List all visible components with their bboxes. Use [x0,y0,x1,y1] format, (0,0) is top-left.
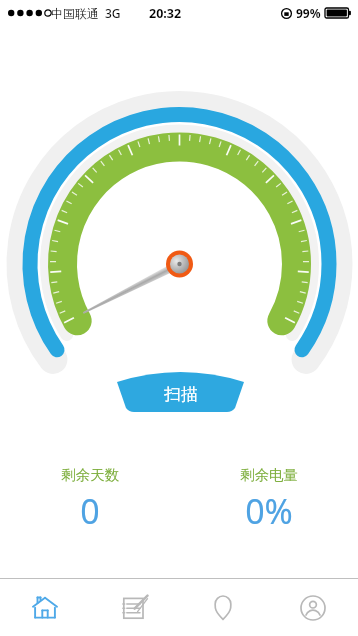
button[interactable]: 扫描 [117,370,244,412]
staticText: 0 [80,488,100,534]
staticText: 3G [105,5,121,21]
button[interactable]: 剩余天数 [0,466,179,534]
staticText: 扫描 [164,384,198,405]
button[interactable]: Account [268,579,358,636]
staticText: 剩余电量 [240,466,298,484]
staticText: 99% [296,5,321,21]
staticText: 剩余天数 [61,466,119,484]
staticText: 中国联通 [51,6,99,21]
button[interactable]: Home [0,579,89,636]
button[interactable]: Records [89,579,178,636]
staticText: 0% [245,488,293,534]
staticText: 20:32 [149,5,182,22]
button[interactable]: 剩余电量 [179,466,358,534]
button[interactable]: Location [178,579,268,636]
